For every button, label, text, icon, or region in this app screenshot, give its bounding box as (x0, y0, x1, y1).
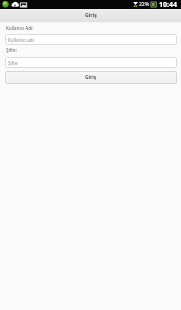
staticText: Kullanıcı Adı: (6, 25, 34, 31)
staticText: 22% (139, 1, 150, 8)
other: Download complete (11, 1, 19, 8)
button[interactable]: Kullanıcı adı (5, 34, 177, 45)
staticText: Şifre (8, 60, 18, 66)
other: App notification (2, 1, 9, 8)
other: Mobile signal (133, 1, 138, 8)
staticText: Kullanıcı adı (8, 37, 34, 43)
staticText: 10:44 (159, 0, 177, 9)
other: Screenshot captured (20, 2, 27, 8)
staticText: Giriş (85, 11, 97, 18)
staticText: Giriş (85, 74, 97, 81)
other: Battery 22 percent (151, 2, 157, 7)
button[interactable]: Şifre (5, 57, 177, 68)
staticText: Şifre: (6, 47, 17, 53)
button[interactable]: Giriş (5, 71, 177, 84)
